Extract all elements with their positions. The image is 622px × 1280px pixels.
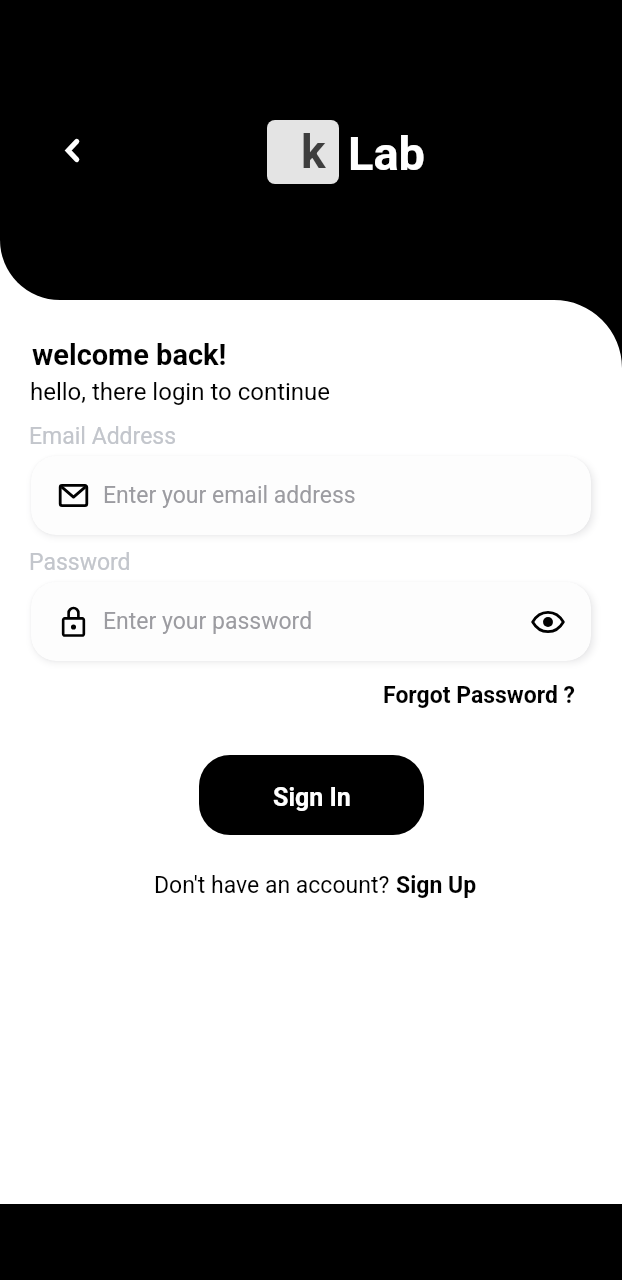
staticText: welcome back! [32,338,227,372]
staticText: Don't have an account? [154,872,396,899]
button[interactable]: Show password [531,605,565,639]
staticText: Email Address [29,423,177,450]
button[interactable]: Sign Up [396,868,477,903]
staticText: Enter your password [103,608,313,635]
staticText: Password [29,549,131,576]
staticText: Forgot Password ? [383,682,576,709]
button[interactable]: Sign In [199,755,424,835]
button[interactable]: Forgot Password ? [379,678,580,713]
button[interactable]: Enter your email address [31,456,591,535]
staticText: Lab [348,126,426,181]
staticText: Enter your email address [103,482,356,509]
button[interactable]: Back [46,124,99,177]
staticText: hello, there login to continue [30,378,331,406]
button[interactable]: Enter your password [31,582,591,661]
staticText: Sign Up [396,872,477,899]
staticText: k [301,125,326,179]
staticText: Sign In [273,783,351,812]
